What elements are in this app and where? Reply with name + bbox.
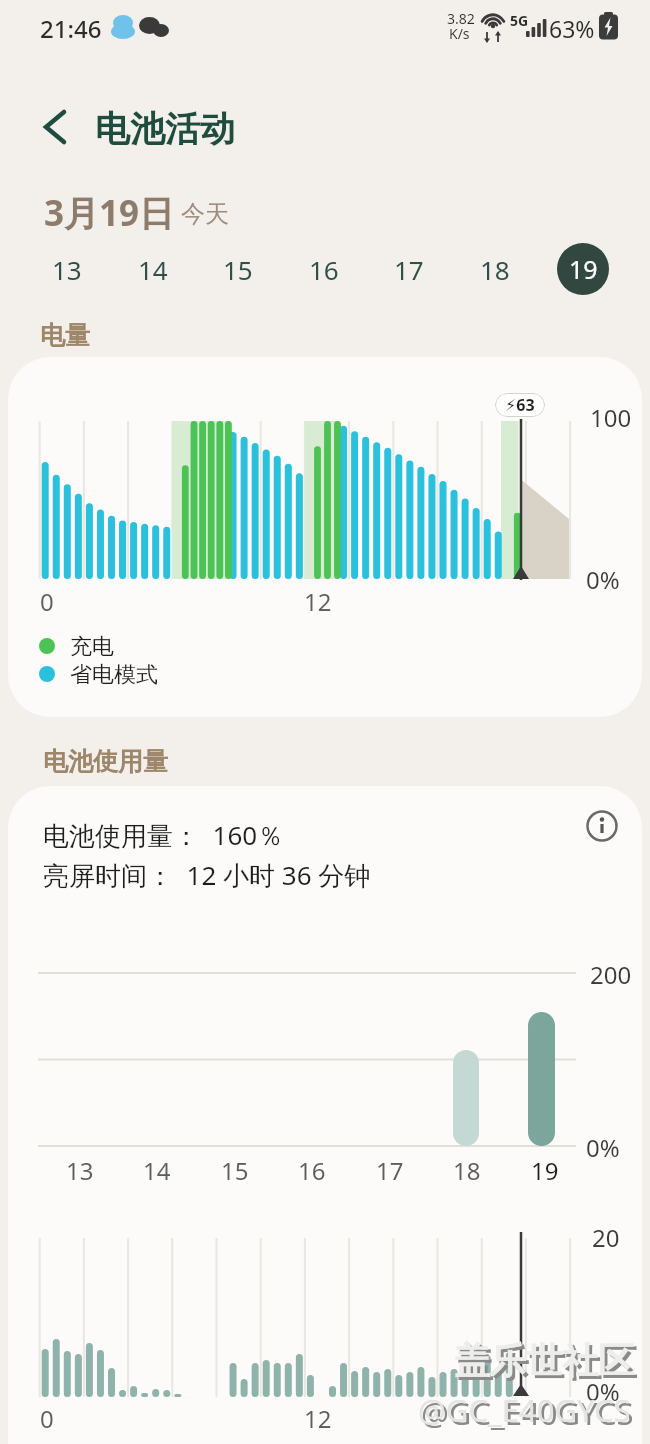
button[interactable]: 19	[557, 243, 609, 295]
button[interactable]: 17	[383, 243, 435, 295]
staticText: 盖乐世社区	[457, 1341, 637, 1386]
staticText: 13	[66, 1154, 94, 1187]
staticText: 5G	[510, 11, 529, 30]
staticText: 今天	[181, 199, 229, 229]
staticText: 200	[590, 958, 632, 991]
staticText: 14	[143, 1154, 171, 1187]
staticText: 15	[221, 1154, 249, 1187]
staticText: 16	[309, 252, 339, 287]
staticText: 省电模式	[70, 661, 158, 689]
staticText: 12	[304, 1402, 332, 1435]
staticText: 14	[138, 252, 168, 287]
staticText: 16	[298, 1154, 326, 1187]
staticText: 0	[40, 585, 54, 618]
button[interactable]: 18	[469, 243, 521, 295]
button[interactable]	[30, 100, 80, 155]
staticText: 18	[453, 1154, 481, 1187]
button[interactable]	[580, 804, 624, 848]
staticText: 15	[223, 252, 253, 287]
staticText: 20	[592, 1221, 620, 1254]
staticText: @GC_E40GYCS	[421, 1392, 634, 1434]
button[interactable]: 15	[212, 243, 264, 295]
staticText: 0	[40, 1402, 54, 1435]
staticText: 63%	[549, 13, 595, 44]
staticText: 13	[52, 252, 82, 287]
button[interactable]: 16	[298, 243, 350, 295]
staticText: 0%	[586, 1131, 620, 1164]
staticText: 充电	[70, 633, 114, 661]
staticText: 21:46	[40, 12, 102, 45]
staticText: 电量	[40, 320, 90, 351]
staticText: 0%	[586, 1375, 620, 1408]
staticText: 亮屏时间： 12 小时 36 分钟	[43, 857, 371, 893]
staticText: 0%	[586, 563, 620, 596]
staticText: 100	[590, 401, 632, 434]
staticText: ⚡63	[505, 394, 535, 416]
staticText: 电池活动	[95, 107, 235, 151]
staticText: 电池使用量： 160％	[43, 817, 284, 853]
button[interactable]: 14	[127, 243, 179, 295]
staticText: 18	[480, 252, 510, 287]
staticText: 19	[531, 1154, 559, 1187]
staticText: 12	[304, 585, 332, 618]
staticText: 17	[394, 252, 424, 287]
staticText: 3月19日	[44, 189, 175, 237]
staticText: K/s	[449, 24, 470, 43]
staticText: 3.82	[447, 9, 475, 28]
staticText: 电池使用量	[43, 746, 168, 777]
staticText: 17	[376, 1154, 404, 1187]
staticText: 盖乐世社区	[454, 1338, 634, 1383]
button[interactable]: 13	[41, 243, 93, 295]
staticText: @GC_E40GYCS	[418, 1389, 631, 1431]
staticText: 19	[569, 252, 598, 286]
